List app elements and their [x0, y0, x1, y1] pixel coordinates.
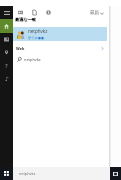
button[interactable]: Settings [44, 8, 53, 17]
staticText: 最適な一致 [15, 17, 37, 22]
button[interactable]: Task view [110, 167, 121, 180]
button[interactable]: netphvkz [13, 27, 107, 41]
button[interactable]: Web [13, 44, 109, 53]
button[interactable]: Menu [0, 6, 13, 19]
staticText: @てぬ●● [28, 35, 44, 40]
staticText: netphvkz [24, 57, 41, 62]
button[interactable]: Library [0, 33, 13, 46]
staticText: netphvkz [19, 171, 36, 176]
staticText: netphvkz [28, 28, 48, 34]
button[interactable]: Home [0, 19, 13, 33]
staticText: ? [5, 62, 8, 70]
button[interactable]: Photos [16, 8, 25, 17]
staticText: ♪ [5, 75, 9, 82]
button[interactable]: netphvkz [13, 54, 109, 64]
button[interactable]: Location [0, 46, 13, 59]
button[interactable]: Documents [30, 8, 39, 17]
button[interactable]: Help [0, 59, 13, 72]
staticText: 最新 [90, 10, 99, 16]
staticText: Web [16, 46, 25, 51]
button[interactable]: Music [0, 72, 13, 85]
button[interactable]: Start [0, 167, 13, 180]
button[interactable]: 最新 [90, 10, 109, 16]
